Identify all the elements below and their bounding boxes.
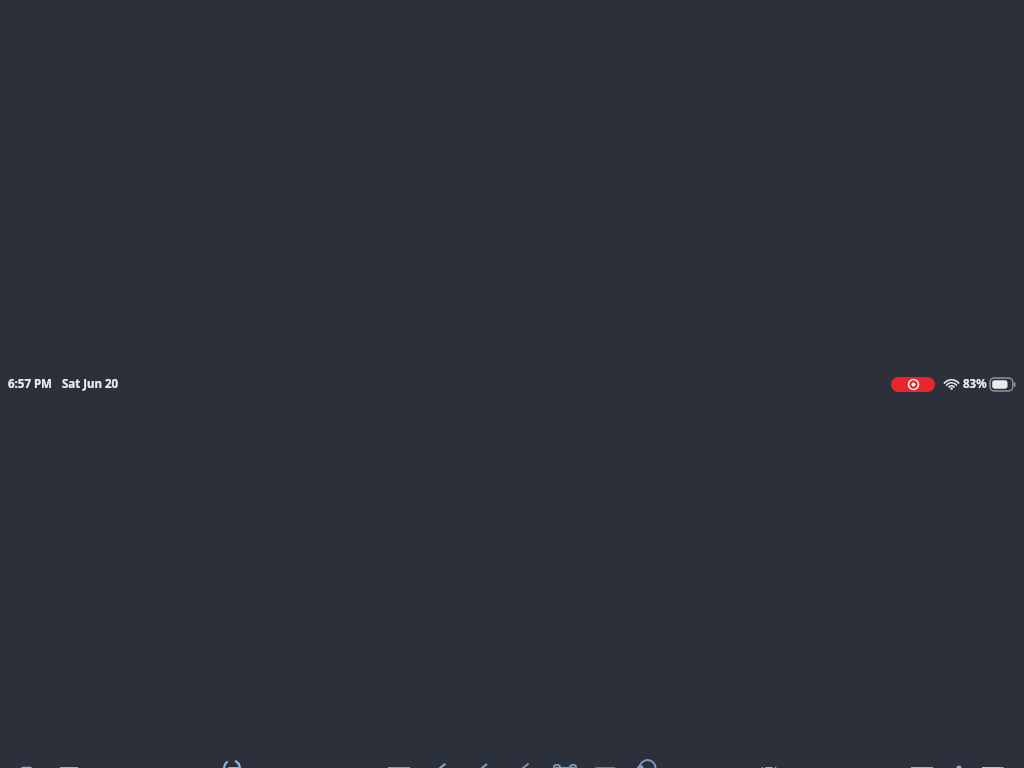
staticText: Sat Jun 20 [62, 376, 119, 392]
staticText: 6:57 PM [8, 376, 52, 392]
staticText: 83% [963, 376, 987, 392]
